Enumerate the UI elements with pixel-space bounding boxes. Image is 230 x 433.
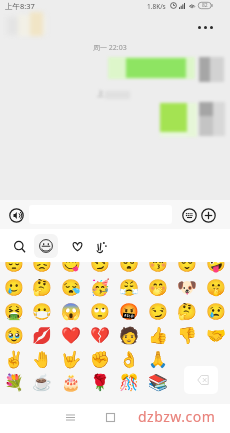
button[interactable]: 😏 bbox=[143, 299, 172, 323]
button[interactable]: 😌 bbox=[172, 262, 201, 275]
button[interactable]: 🤔 bbox=[28, 275, 56, 299]
button[interactable]: 👎 bbox=[172, 323, 201, 347]
button[interactable]: 💔 bbox=[85, 323, 114, 347]
button[interactable]: 🤮 bbox=[0, 299, 28, 323]
staticText: 🤬 bbox=[119, 302, 139, 321]
staticText: 😞 bbox=[32, 262, 52, 273]
button[interactable]: ✌️ bbox=[0, 347, 28, 371]
staticText: 🥲 bbox=[4, 278, 24, 297]
staticText: 上 bbox=[97, 89, 104, 98]
staticText: 🤭 bbox=[148, 278, 168, 297]
staticText: 🤟 bbox=[61, 350, 81, 369]
button[interactable]: 🎂 bbox=[56, 371, 85, 393]
button[interactable]: 😴 bbox=[114, 262, 143, 275]
staticText: 💋 bbox=[32, 326, 52, 345]
button[interactable]: 😱 bbox=[56, 299, 85, 323]
button[interactable]: Sticker gallery bbox=[90, 235, 113, 258]
staticText: 📚 bbox=[148, 373, 168, 392]
button[interactable]: 🌹 bbox=[85, 371, 114, 393]
button[interactable]: 😔 bbox=[0, 262, 28, 275]
button[interactable]: Backspace bbox=[184, 366, 218, 394]
button[interactable]: Favorite stickers bbox=[66, 235, 89, 258]
staticText: ☕ bbox=[32, 373, 52, 392]
button[interactable]: 😋 bbox=[56, 262, 85, 275]
button[interactable]: 🤪 bbox=[201, 262, 230, 275]
button[interactable]: Home bbox=[98, 405, 122, 429]
staticText: 🐶 bbox=[177, 278, 197, 297]
button[interactable]: 🎊 bbox=[114, 371, 143, 393]
staticText: 💔 bbox=[90, 326, 110, 345]
button[interactable]: 🤫 bbox=[201, 275, 230, 299]
button[interactable]: 😏 bbox=[85, 262, 114, 275]
staticText: 😏 bbox=[148, 302, 168, 321]
button[interactable]: 🤟 bbox=[56, 347, 85, 371]
staticText: 🎂 bbox=[61, 373, 81, 392]
staticText: 🎊 bbox=[119, 373, 139, 392]
button[interactable]: 💐 bbox=[0, 371, 28, 393]
staticText: 🥹 bbox=[4, 326, 24, 345]
staticText: 😱 bbox=[61, 302, 81, 321]
staticText: ❤️ bbox=[61, 326, 81, 345]
staticText: dzbzw.com bbox=[138, 407, 216, 426]
button[interactable]: 👌 bbox=[114, 347, 143, 371]
button[interactable]: 😷 bbox=[28, 299, 56, 323]
button[interactable] bbox=[201, 371, 230, 393]
staticText: 🤫 bbox=[206, 278, 226, 297]
button[interactable]: 📚 bbox=[143, 371, 172, 393]
staticText: 😔 bbox=[4, 262, 24, 273]
button[interactable]: 🤔 bbox=[172, 299, 201, 323]
staticText: 🤔 bbox=[32, 278, 52, 297]
staticText: 😚 bbox=[148, 262, 168, 273]
staticText: ✌️ bbox=[4, 350, 24, 369]
button[interactable]: 🥲 bbox=[0, 275, 28, 299]
staticText: 🤪 bbox=[206, 262, 226, 273]
button[interactable]: 🥳 bbox=[85, 275, 114, 299]
staticText: 1.8K/s bbox=[147, 2, 166, 11]
button[interactable]: 😞 bbox=[28, 262, 56, 275]
staticText: 🧑 bbox=[119, 326, 139, 345]
button[interactable]: 💋 bbox=[28, 323, 56, 347]
button[interactable]: 🙏 bbox=[143, 347, 172, 371]
staticText: 🙏 bbox=[148, 350, 168, 369]
button[interactable]: 😢 bbox=[201, 299, 230, 323]
button[interactable]: 🤭 bbox=[143, 275, 172, 299]
button[interactable]: 🧑 bbox=[114, 323, 143, 347]
button[interactable] bbox=[150, 95, 230, 145]
button[interactable]: 😚 bbox=[143, 262, 172, 275]
button[interactable]: More options bbox=[198, 22, 218, 32]
button[interactable]: 😤 bbox=[114, 275, 143, 299]
staticText: 🙄 bbox=[90, 302, 110, 321]
button[interactable]: 🤝 bbox=[201, 323, 230, 347]
button[interactable]: Search emoji bbox=[8, 235, 31, 258]
button[interactable]: Emoji bbox=[34, 234, 58, 258]
button[interactable]: Voice message bbox=[6, 205, 26, 225]
staticText: 😌 bbox=[177, 262, 197, 273]
button[interactable]: 🙄 bbox=[85, 299, 114, 323]
button[interactable]: Keyboard bbox=[179, 205, 199, 225]
button[interactable]: ❤️ bbox=[56, 323, 85, 347]
staticText: ✊ bbox=[90, 350, 110, 369]
staticText: 😢 bbox=[206, 302, 226, 321]
button[interactable]: 😪 bbox=[56, 275, 85, 299]
staticText: 上午8:37 bbox=[5, 1, 35, 11]
button[interactable] bbox=[100, 50, 230, 90]
button[interactable]: ☕ bbox=[28, 371, 56, 393]
staticText: 😷 bbox=[32, 302, 52, 321]
staticText: 😴 bbox=[119, 262, 139, 273]
staticText: 周一 22:03 bbox=[93, 43, 127, 53]
staticText: 😪 bbox=[61, 278, 81, 297]
button[interactable] bbox=[172, 371, 201, 393]
button[interactable]: Recent apps bbox=[58, 405, 82, 429]
staticText: 👎 bbox=[177, 326, 197, 345]
button[interactable]: ✊ bbox=[85, 347, 114, 371]
button[interactable]: 🤚 bbox=[28, 347, 56, 371]
staticText: 🤔 bbox=[177, 302, 197, 321]
button[interactable]: 👍 bbox=[143, 323, 172, 347]
button[interactable]: More functions bbox=[198, 205, 218, 225]
button[interactable]: 🥹 bbox=[0, 323, 28, 347]
button[interactable]: 🤬 bbox=[114, 299, 143, 323]
button[interactable]: 🐶 bbox=[172, 275, 201, 299]
